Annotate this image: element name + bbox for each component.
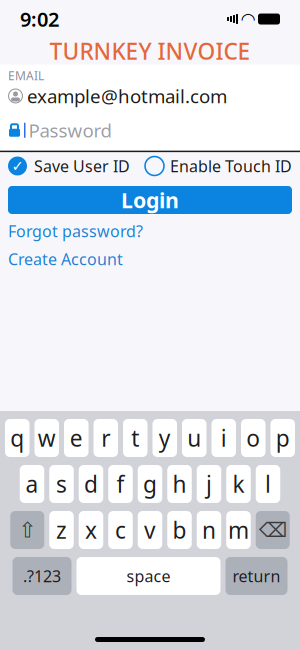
staticText: r xyxy=(101,423,110,453)
button[interactable]: b xyxy=(167,511,192,549)
button[interactable]: o xyxy=(241,419,265,457)
staticText: ⌫ xyxy=(259,519,287,541)
button[interactable]: w xyxy=(34,419,59,457)
staticText: v xyxy=(144,515,156,545)
staticText: c xyxy=(115,515,126,545)
staticText: Save User ID xyxy=(34,155,130,177)
button[interactable]: space xyxy=(76,557,220,595)
staticText: o xyxy=(246,423,260,453)
staticText: i xyxy=(221,423,227,453)
staticText: y xyxy=(159,423,171,453)
button[interactable]: q xyxy=(5,419,29,457)
staticText: .?123 xyxy=(23,565,61,587)
button[interactable]: Login xyxy=(8,186,292,214)
staticText: Enable Touch ID xyxy=(170,155,292,177)
button[interactable]: e xyxy=(64,419,88,457)
staticText: d xyxy=(84,469,98,499)
button[interactable]: j xyxy=(197,465,221,503)
button[interactable]: z xyxy=(49,511,74,549)
button[interactable]: ✓ xyxy=(8,155,130,177)
button[interactable]: m xyxy=(226,511,251,549)
staticText: ⇧ xyxy=(18,518,36,542)
button[interactable]: Create Account xyxy=(8,246,292,272)
staticText: s xyxy=(56,469,67,499)
staticText: Login xyxy=(121,186,179,214)
button[interactable]: p xyxy=(270,419,295,457)
staticText: m xyxy=(228,515,249,545)
staticText: 9:02 xyxy=(20,6,59,32)
button[interactable]: y xyxy=(152,419,177,457)
staticText: example@hotmail.com xyxy=(27,84,227,108)
button[interactable]: Delete xyxy=(256,511,290,549)
staticText: u xyxy=(187,423,201,453)
button[interactable]: Forgot password? xyxy=(8,216,292,246)
button[interactable]: h xyxy=(167,465,192,503)
staticText: w xyxy=(38,423,56,453)
staticText: p xyxy=(276,423,290,453)
staticText: Password xyxy=(28,118,111,143)
button[interactable]: s xyxy=(49,465,74,503)
button[interactable]: g xyxy=(138,465,162,503)
staticText: EMAIL xyxy=(8,68,44,83)
button[interactable]: Shift xyxy=(10,511,44,549)
button[interactable]: d xyxy=(79,465,103,503)
staticText: f xyxy=(116,469,124,499)
staticText: q xyxy=(10,423,24,453)
button[interactable]: n xyxy=(197,511,221,549)
staticText: Forgot password? xyxy=(8,220,143,242)
button[interactable]: r xyxy=(93,419,118,457)
staticText: Create Account xyxy=(8,248,123,270)
staticText: t xyxy=(131,423,139,453)
staticText: TURNKEY INVOICE xyxy=(49,36,250,66)
button[interactable]: u xyxy=(182,419,206,457)
button[interactable]: t xyxy=(123,419,147,457)
button[interactable]: v xyxy=(138,511,162,549)
staticText: space xyxy=(126,565,170,587)
button[interactable]: x xyxy=(79,511,103,549)
staticText: e xyxy=(70,423,83,453)
button[interactable]: .?123 xyxy=(12,557,71,595)
button[interactable]: l xyxy=(256,465,280,503)
button[interactable]: f xyxy=(108,465,133,503)
staticText: x xyxy=(85,515,97,545)
staticText: z xyxy=(56,515,67,545)
staticText: a xyxy=(25,469,38,499)
button[interactable]: i xyxy=(211,419,236,457)
button[interactable]: return xyxy=(225,557,287,595)
staticText: k xyxy=(232,469,244,499)
button[interactable]: a xyxy=(20,465,44,503)
staticText: ◠ xyxy=(241,9,254,29)
staticText: return xyxy=(232,565,280,587)
button[interactable]: c xyxy=(108,511,133,549)
staticText: ✓ xyxy=(11,158,23,174)
staticText: j xyxy=(206,469,212,499)
staticText: n xyxy=(202,515,216,545)
staticText: l xyxy=(265,469,271,499)
staticText: h xyxy=(172,469,186,499)
button[interactable]: k xyxy=(226,465,251,503)
staticText: b xyxy=(172,515,186,545)
button[interactable]: Enable Touch ID xyxy=(145,155,292,177)
staticText: g xyxy=(143,469,157,499)
